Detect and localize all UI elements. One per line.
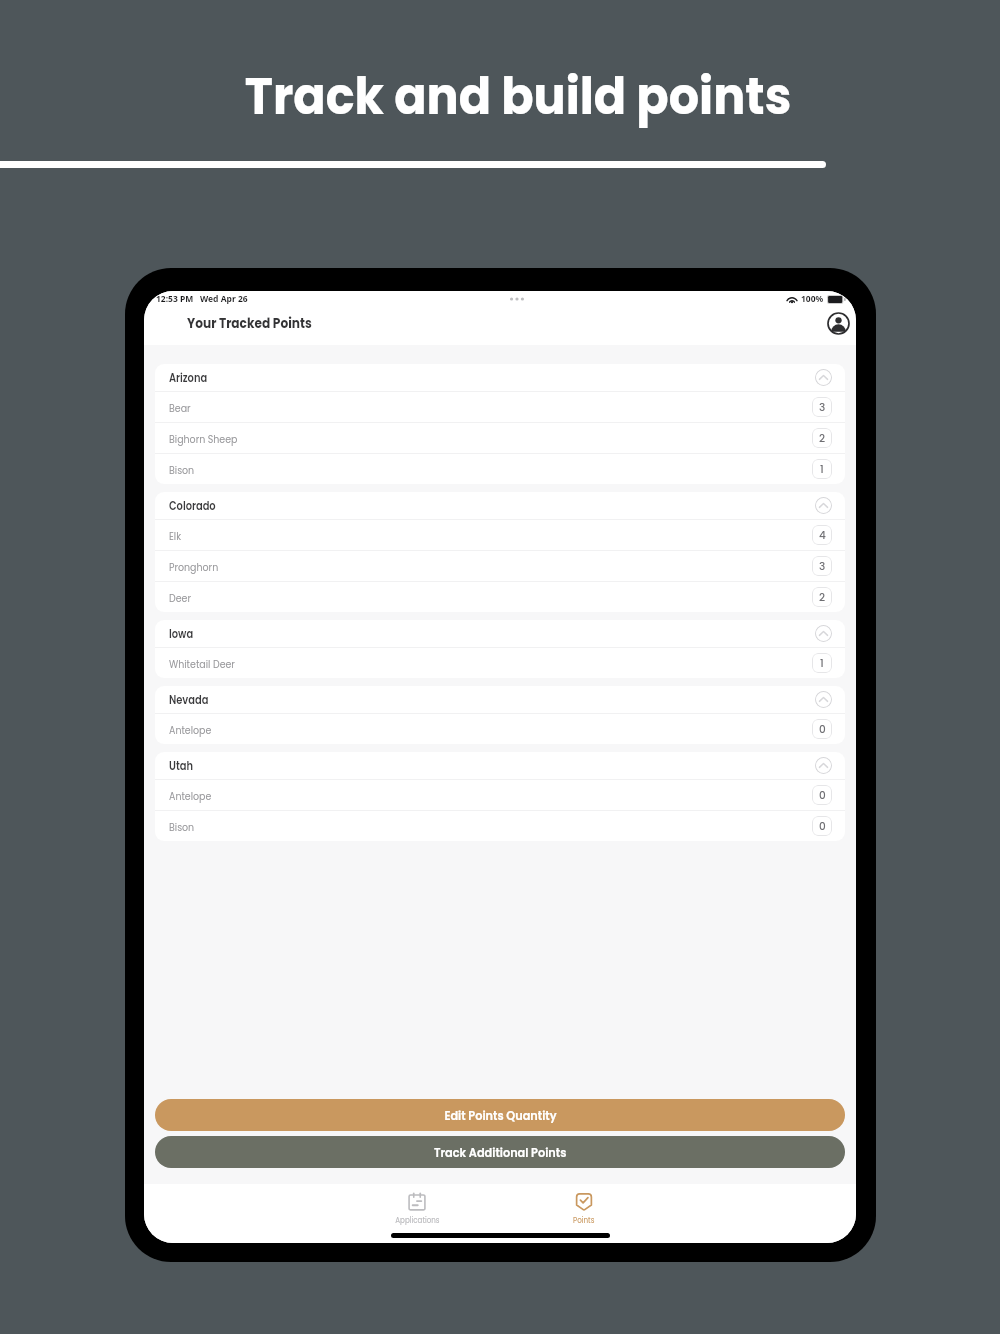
staticText: 1 [820,656,824,671]
staticText: Whitetail Deer [169,656,235,671]
button[interactable]: Deer [155,582,845,612]
staticText: 1 [820,462,824,477]
staticText: Colorado [169,498,216,514]
staticText: Pronghorn [169,559,219,574]
button[interactable]: Bear [155,392,845,422]
staticText: Wed Apr 26 [200,293,248,305]
button[interactable]: Collapse [815,497,832,514]
staticText: Bison [169,462,195,477]
button[interactable]: Collapse [815,625,832,642]
staticText: Arizona [169,370,208,386]
button[interactable]: Collapse [815,757,832,774]
button[interactable]: Bison [155,454,845,484]
button[interactable]: Track Additional Points [155,1136,845,1168]
staticText: Bighorn Sheep [169,431,238,446]
button[interactable]: Collapse [815,691,832,708]
staticText: 0 [819,788,826,803]
staticText: Nevada [169,692,209,708]
button[interactable]: Bighorn Sheep [155,423,845,453]
staticText: 4 [819,528,826,543]
button[interactable]: Arizona [155,364,845,391]
button[interactable]: Nevada [155,686,845,713]
staticText: 0 [819,722,826,737]
button[interactable]: Antelope [155,780,845,810]
staticText: Utah [169,758,193,774]
staticText: Antelope [169,788,212,803]
button[interactable]: Colorado [155,492,845,519]
staticText: 100% [801,293,824,305]
staticText: 0 [819,819,826,834]
staticText: Applications [395,1214,440,1226]
button[interactable]: Points [529,1184,639,1226]
staticText: Track and build points [50,60,985,131]
button[interactable]: Pronghorn [155,551,845,581]
button[interactable]: Bison [155,811,845,841]
staticText: 2 [819,431,826,446]
button[interactable]: Utah [155,752,845,779]
button[interactable]: Iowa [155,620,845,647]
button[interactable]: Antelope [155,714,845,744]
button[interactable]: Elk [155,520,845,550]
staticText: 2 [819,590,826,605]
staticText: Your Tracked Points [187,313,312,333]
button[interactable]: Whitetail Deer [155,648,845,678]
button[interactable]: Edit Points Quantity [155,1099,845,1131]
staticText: Deer [169,590,191,605]
staticText: Edit Points Quantity [444,1106,557,1124]
staticText: Points [573,1214,595,1226]
staticText: Elk [169,528,182,543]
staticText: 3 [819,400,826,415]
button[interactable]: Applications [362,1184,472,1226]
button[interactable]: Account [824,309,852,337]
staticText: Track Additional Points [434,1143,567,1161]
staticText: Antelope [169,722,212,737]
staticText: 12:53 PM [156,293,194,305]
staticText: Bear [169,400,191,415]
staticText: Iowa [169,626,194,642]
staticText: 3 [819,559,826,574]
staticText: Bison [169,819,195,834]
button[interactable]: Collapse [815,369,832,386]
